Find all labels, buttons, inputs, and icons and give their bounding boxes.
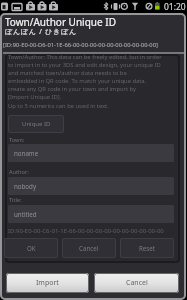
staticText: [ID:90-E0-00-D6-01-1E-66-00-00-00-00-00-… [3,41,158,49]
staticText: Unique ID [22,120,51,128]
staticText: Town/Author Unique ID [5,15,116,29]
button[interactable]: noname [8,144,174,162]
staticText: nobody [14,182,37,190]
staticText: Up to 5 numerics can be used in text. [8,102,109,110]
staticText: Town: [9,136,25,144]
staticText: Import [36,278,59,288]
button[interactable]: OK [4,238,58,258]
staticText: Author: [9,168,29,176]
staticText: ID:90-E0-00-C6-01-1E-66-00-00-00-00-00-0… [8,227,164,235]
staticText: Title: [9,196,22,204]
staticText: OK [27,244,36,252]
button[interactable]: Unique ID [8,115,64,133]
button[interactable]: Cancel [94,273,179,293]
staticText: ぼんぼん / ひきぼん [5,27,77,37]
staticText: Cancel [126,278,148,288]
button[interactable]: Import [6,273,89,293]
staticText: Town/Author: This data can be freely edi… [8,53,162,101]
button[interactable]: nobody [8,177,174,195]
button[interactable]: Reset [120,238,174,258]
button[interactable]: Cancel [62,238,116,258]
staticText: noname [14,149,39,157]
button[interactable]: untitled [8,205,174,223]
staticText: untitled [14,210,37,218]
staticText: Cancel [79,244,99,252]
staticText: Reset [139,244,156,252]
staticText: 01:20 [164,1,186,13]
